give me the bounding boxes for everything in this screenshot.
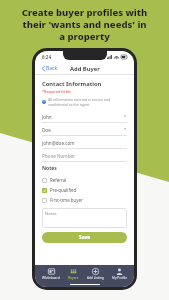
- staticText: Whiteboard: [42, 276, 60, 280]
- staticText: Phone Number: [42, 153, 75, 159]
- staticText: *: [124, 127, 127, 132]
- staticText: Notes: [45, 211, 57, 217]
- staticText: Referral: [50, 177, 67, 183]
- staticText: 6:24: [42, 54, 51, 60]
- button[interactable]: My Profile: [111, 268, 128, 280]
- button[interactable]: First-time buyer: [42, 195, 127, 205]
- button[interactable]: Phone Number: [42, 149, 127, 162]
- button[interactable]: Whiteboard: [41, 268, 61, 280]
- staticText: First-time buyer: [50, 197, 83, 203]
- staticText: Create buyer profiles with their 'wants …: [10, 6, 159, 43]
- button[interactable]: Referral: [42, 175, 127, 185]
- staticText: John: [42, 114, 52, 120]
- button[interactable]: John: [42, 110, 127, 123]
- button[interactable]: Notes: [42, 208, 127, 228]
- staticText: Back: [46, 65, 58, 72]
- staticText: john@doe.com: [42, 140, 75, 146]
- button[interactable]: Back: [40, 63, 60, 74]
- button[interactable]: Buyers: [67, 268, 80, 280]
- button[interactable]: john@doe.com: [42, 136, 127, 149]
- button[interactable]: Doe: [42, 123, 127, 136]
- staticText: Contact Information: [42, 80, 102, 88]
- staticText: *: [124, 114, 127, 119]
- button[interactable]: Add Listing: [86, 268, 105, 280]
- button[interactable]: Pre-qualified: [42, 185, 127, 195]
- staticText: Buyers: [68, 276, 79, 280]
- button[interactable]: Save: [42, 232, 127, 243]
- staticText: Doe: [42, 127, 51, 133]
- staticText: Add Listing: [87, 276, 104, 280]
- staticText: *Required fields: [42, 89, 71, 94]
- staticText: Add Buyer: [70, 65, 100, 73]
- staticText: All information entered is secure and co…: [48, 97, 127, 107]
- staticText: Notes: [42, 165, 57, 172]
- staticText: My Profile: [112, 276, 127, 280]
- staticText: Save: [79, 234, 91, 241]
- staticText: Pre-qualified: [50, 187, 77, 193]
